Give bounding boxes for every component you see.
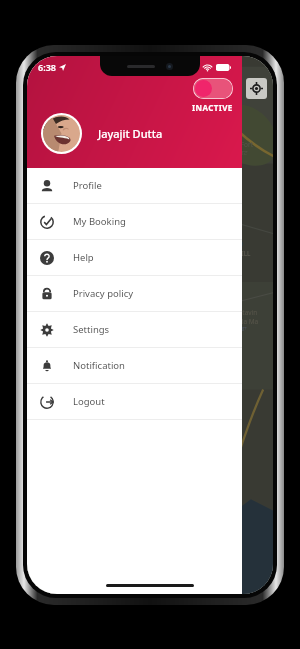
staticText: ਕ੍ਰਿਡਾ <box>231 326 247 332</box>
staticText: Ashtavin <box>231 308 258 317</box>
staticText: Krida Ma <box>231 317 259 326</box>
staticText: Settings <box>73 323 110 336</box>
button[interactable]: Logout <box>27 384 242 419</box>
staticText: P HILL <box>231 249 251 258</box>
button[interactable]: Notification <box>27 348 242 383</box>
button[interactable]: Profile <box>27 168 242 203</box>
staticText: 6:38 <box>38 61 56 73</box>
staticText: My Booking <box>73 215 126 228</box>
staticText: Help <box>73 251 94 264</box>
staticText: Notification <box>73 359 125 372</box>
staticText: Logout <box>73 395 105 408</box>
staticText: a ਫ਼ੋਰਟ <box>231 149 248 157</box>
button[interactable]: Settings <box>27 312 242 347</box>
staticText: on Fort <box>231 140 253 149</box>
staticText: INACTIVE <box>192 102 233 113</box>
staticText: Privacy policy <box>73 287 134 300</box>
button[interactable]: INACTIVE <box>190 76 235 115</box>
button[interactable]: Help <box>27 240 242 275</box>
staticText: Profile <box>73 179 102 192</box>
button[interactable]: Jayajit Dutta <box>41 113 163 154</box>
button[interactable]: Privacy policy <box>27 276 242 311</box>
button[interactable]: My location <box>246 78 267 99</box>
staticText: Jayajit Dutta <box>98 126 163 141</box>
button[interactable]: My Booking <box>27 204 242 239</box>
